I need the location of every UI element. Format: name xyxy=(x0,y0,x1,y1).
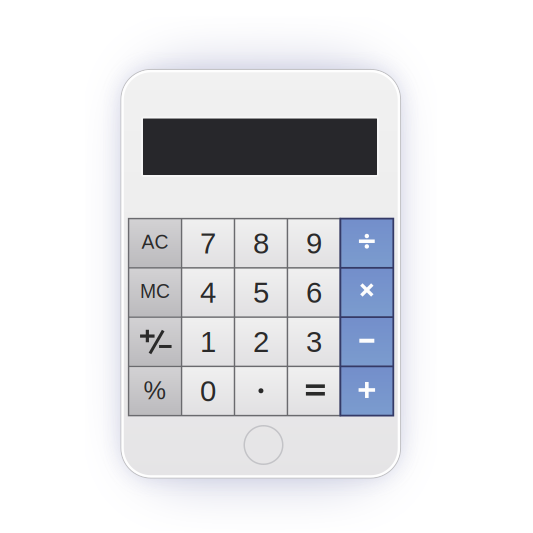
button[interactable]: 4 xyxy=(181,268,234,317)
button[interactable]: 7 xyxy=(181,219,234,268)
button[interactable]: 5 xyxy=(234,268,287,317)
button[interactable]: 6 xyxy=(287,268,340,317)
button[interactable]: Home xyxy=(244,426,283,464)
staticText: 1 xyxy=(200,325,216,358)
staticText: MC xyxy=(140,280,170,302)
button[interactable]: All clear xyxy=(129,219,181,268)
button[interactable]: 2 xyxy=(234,317,287,366)
staticText: 0 xyxy=(200,375,216,407)
staticText: 5 xyxy=(253,276,269,309)
button[interactable]: Equals xyxy=(287,366,340,416)
staticText: 6 xyxy=(306,276,322,309)
button[interactable]: 9 xyxy=(287,219,340,268)
button[interactable]: 8 xyxy=(234,219,287,268)
button[interactable]: Plus or minus xyxy=(129,317,181,366)
button[interactable]: Subtract xyxy=(340,317,393,366)
staticText: 3 xyxy=(306,325,322,358)
button[interactable]: Divide xyxy=(340,219,393,268)
button[interactable]: 3 xyxy=(287,317,340,366)
button[interactable]: Percent xyxy=(129,366,181,416)
button[interactable]: 1 xyxy=(181,317,234,366)
staticText: 2 xyxy=(253,325,269,358)
staticText: % xyxy=(144,376,167,405)
staticText: 8 xyxy=(253,227,269,260)
button[interactable]: Add xyxy=(340,366,393,416)
button[interactable]: 0 xyxy=(181,366,234,416)
staticText: 4 xyxy=(200,276,216,309)
button[interactable]: Decimal point xyxy=(234,366,287,416)
button[interactable]: Memory clear xyxy=(129,268,181,317)
staticText: 7 xyxy=(200,227,216,260)
staticText: AC xyxy=(142,231,169,253)
button[interactable]: Multiply xyxy=(340,268,393,317)
staticText: 9 xyxy=(306,227,322,260)
